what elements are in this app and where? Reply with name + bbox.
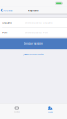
staticText: Usuario [2, 21, 12, 24]
staticText: Acceso [14, 110, 20, 113]
staticText: ¿Olvidaste tu contraseña? [23, 53, 44, 56]
staticText: Introduce tu usuario [25, 21, 53, 24]
staticText: Ayuda [48, 111, 53, 113]
staticText: Ajustes [3, 8, 12, 12]
button[interactable]: Ajustes [0, 7, 13, 13]
button[interactable]: Acceso [0, 103, 33, 119]
button[interactable]: Iniciar sesión [0, 38, 67, 49]
staticText: Registro [28, 8, 39, 12]
button[interactable]: Ayuda [33, 103, 67, 119]
staticText: Introduce tu PIN [25, 31, 48, 34]
staticText: Iniciar sesión [24, 42, 43, 46]
button[interactable]: ¿Olvidaste tu contraseña? [0, 52, 67, 57]
staticText: PIN [2, 31, 7, 34]
